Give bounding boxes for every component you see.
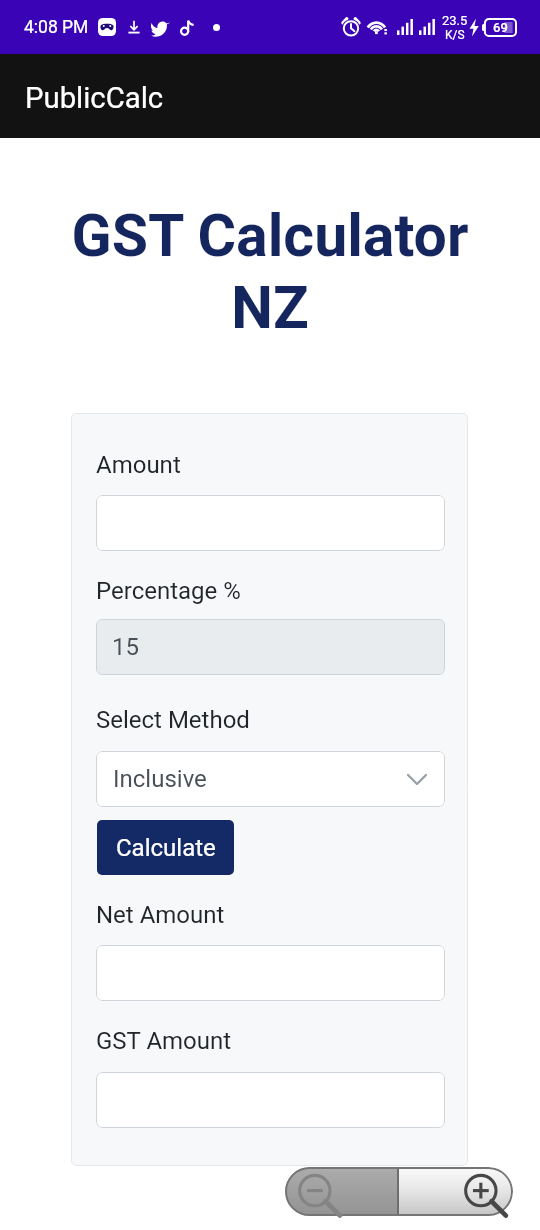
staticText: Inclusive <box>113 765 207 793</box>
button[interactable] <box>96 945 445 1001</box>
staticText: K/S <box>445 28 465 42</box>
staticText: 15 <box>112 633 139 661</box>
staticText: 23.5 <box>442 13 468 28</box>
staticText: Net Amount <box>96 901 225 929</box>
button[interactable] <box>96 1072 445 1128</box>
staticText: Select Method <box>96 706 250 734</box>
button[interactable]: Zoom out <box>285 1167 398 1216</box>
staticText: Amount <box>96 451 181 479</box>
staticText: GST Amount <box>96 1027 232 1055</box>
button[interactable] <box>96 495 445 551</box>
staticText: Calculate <box>116 834 216 862</box>
button[interactable]: Zoom in <box>398 1167 513 1216</box>
button[interactable]: Inclusive <box>96 751 445 807</box>
staticText: Percentage % <box>96 577 241 605</box>
button[interactable]: Calculate <box>97 820 234 875</box>
button[interactable]: 15 <box>96 619 445 675</box>
staticText: PublicCalc <box>25 81 164 115</box>
staticText: 4:08 PM <box>24 17 89 38</box>
staticText: GST Calculator NZ <box>60 201 480 342</box>
staticText: 69 <box>493 20 508 35</box>
